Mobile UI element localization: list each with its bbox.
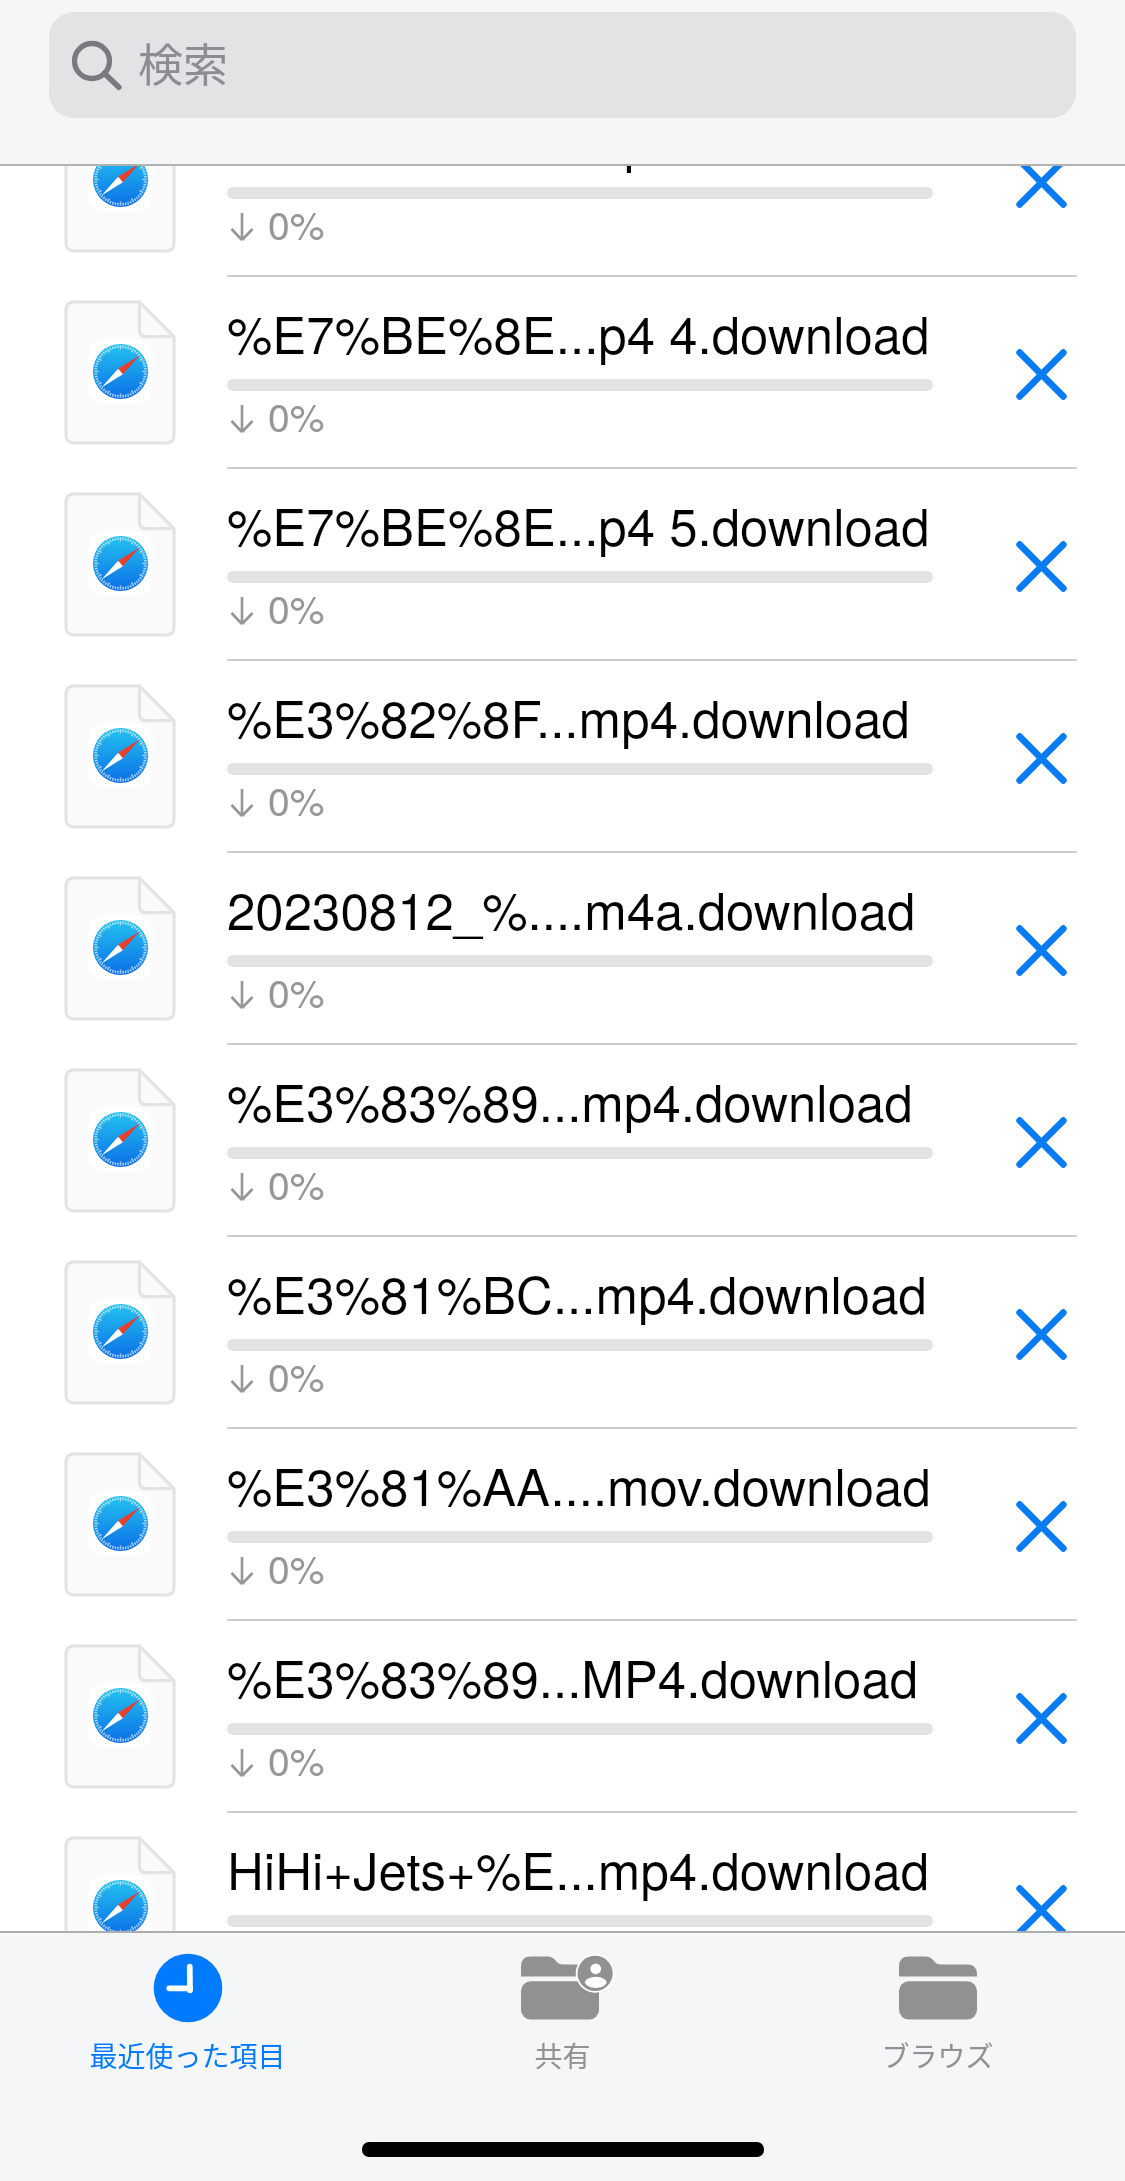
staticText: 0% (268, 1155, 325, 1211)
staticText: %E3%83%89...mp4.download (227, 1063, 913, 1136)
button[interactable]: %E3%82%8F...mp4.download (0, 661, 1125, 853)
staticText: ブラウズ (881, 2035, 994, 2076)
staticText: 20230812_%....m4a.download (227, 871, 916, 944)
staticText: %E3%81%BC...mp4.download (227, 1255, 927, 1328)
button[interactable]: HiHi+Jets+%E...mp4.download (0, 1813, 1125, 2005)
other: Browse (899, 1949, 977, 2027)
button[interactable]: Shared (375, 1933, 750, 2073)
staticText: 0% (268, 963, 325, 1019)
button[interactable]: %E7%BE%8E...p4 5.download (0, 469, 1125, 661)
button[interactable]: Cancel download (1004, 1681, 1079, 1756)
staticText: 0% (268, 195, 325, 251)
staticText: 0% (268, 1347, 325, 1403)
staticText: 0% (268, 579, 325, 635)
button[interactable]: Cancel download (1004, 1297, 1079, 1372)
staticText: %E7%BE%8E...p4 5.download (227, 487, 930, 560)
button[interactable]: %E3%83%89...MP4.download (0, 1621, 1125, 1813)
button[interactable]: Cancel download (1004, 1105, 1079, 1180)
staticText: HiHi+Jets+%E...mp4.download (227, 1831, 930, 1904)
other: Recents (149, 1949, 227, 2027)
button[interactable]: Cancel download (1004, 721, 1079, 796)
button[interactable]: Cancel download (1004, 145, 1079, 220)
staticText: 最近使った項目 (89, 2035, 286, 2076)
button[interactable]: Recents (0, 1933, 375, 2073)
staticText: %E7%BE%8E...p4 4.download (227, 295, 930, 368)
button[interactable]: Cancel download (1004, 337, 1079, 412)
button[interactable]: Cancel download (1004, 1873, 1079, 1948)
button[interactable]: Browse (750, 1933, 1125, 2073)
button[interactable]: Cancel download (1004, 529, 1079, 604)
staticText: %E3%82%8F...mp4.download (227, 679, 910, 752)
button[interactable]: %E7%BE%8E...p4 4.download (0, 277, 1125, 469)
button[interactable]: %E3%83%89...mp4.download (0, 1045, 1125, 1237)
button[interactable]: %E3%83%89...mp4.download (0, 85, 1125, 277)
staticText: 検索 (138, 30, 229, 95)
staticText: 0% (268, 387, 325, 443)
staticText: %E3%81%AA....mov.download (227, 1447, 931, 1520)
button[interactable]: 20230812_%....m4a.download (0, 853, 1125, 1045)
staticText: %E3%83%89...MP4.download (227, 1639, 919, 1712)
staticText: 0% (268, 1731, 325, 1787)
staticText: 0% (268, 1923, 325, 1979)
button[interactable]: %E3%81%BC...mp4.download (0, 1237, 1125, 1429)
staticText: %E3%83%89...mp4.download (227, 103, 913, 176)
staticText: 0% (268, 1539, 325, 1595)
staticText: 0% (268, 771, 325, 827)
button[interactable]: Cancel download (1004, 913, 1079, 988)
staticText: 共有 (534, 2035, 591, 2076)
other: Shared (524, 1949, 602, 2027)
button[interactable]: Cancel download (1004, 1489, 1079, 1564)
button[interactable]: Search (49, 12, 1076, 118)
button[interactable]: %E3%81%AA....mov.download (0, 1429, 1125, 1621)
